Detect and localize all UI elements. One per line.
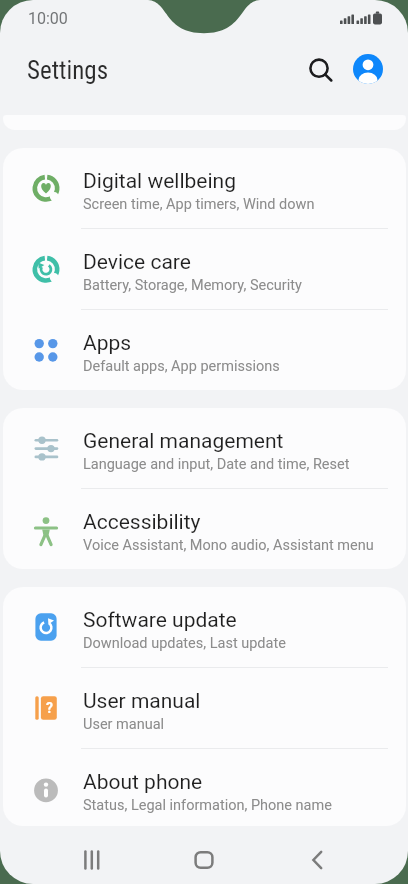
staticText: Download updates, Last update: [83, 635, 286, 652]
button[interactable]: General management: [3, 408, 406, 488]
staticText: General management: [83, 429, 284, 454]
staticText: Settings: [27, 56, 109, 85]
button[interactable]: [169, 826, 239, 884]
staticText: 10:00: [28, 9, 68, 28]
staticText: Device care: [83, 250, 191, 275]
staticText: User manual: [83, 689, 201, 714]
button[interactable]: Digital wellbeing: [3, 148, 406, 228]
staticText: Status, Legal information, Phone name: [83, 797, 332, 814]
button[interactable]: Device care: [3, 229, 406, 309]
button[interactable]: [353, 54, 383, 84]
staticText: Software update: [83, 608, 237, 633]
staticText: Default apps, App permissions: [83, 358, 280, 375]
staticText: Screen time, App timers, Wind down: [83, 196, 315, 213]
staticText: Digital wellbeing: [83, 169, 236, 194]
button[interactable]: Apps: [3, 310, 406, 390]
button[interactable]: [302, 50, 338, 86]
staticText: Voice Assistant, Mono audio, Assistant m…: [83, 537, 374, 554]
staticText: Accessibility: [83, 510, 201, 535]
staticText: About phone: [83, 770, 203, 795]
button[interactable]: ?: [3, 668, 406, 748]
button[interactable]: About phone: [3, 749, 406, 826]
button[interactable]: Software update: [3, 587, 406, 667]
staticText: Language and input, Date and time, Reset: [83, 456, 350, 473]
button[interactable]: [283, 826, 353, 884]
staticText: Battery, Storage, Memory, Security: [83, 277, 302, 294]
staticText: ?: [46, 700, 53, 716]
staticText: Apps: [83, 331, 132, 356]
button[interactable]: Accessibility: [3, 489, 406, 569]
staticText: User manual: [83, 716, 165, 733]
button[interactable]: [57, 826, 127, 884]
